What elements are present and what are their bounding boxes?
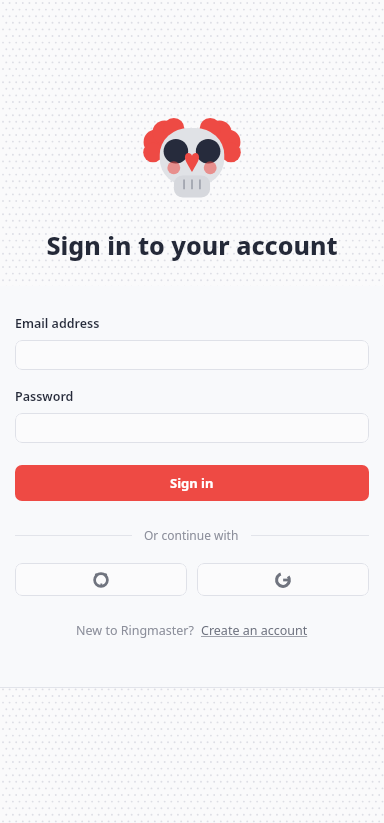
button[interactable]: Sign in with GitHub — [15, 563, 187, 596]
button[interactable] — [15, 340, 369, 370]
staticText: Sign in to your account — [46, 228, 338, 262]
staticText: Create an account — [201, 622, 308, 639]
staticText: Sign in — [170, 474, 214, 492]
button[interactable] — [15, 413, 369, 443]
button[interactable]: Create an account — [201, 622, 308, 639]
staticText: Email address — [15, 315, 100, 332]
staticText: Password — [15, 388, 74, 405]
button[interactable]: Sign in — [15, 465, 369, 501]
button[interactable]: Sign in with Google — [197, 563, 369, 596]
staticText: Or continue with — [144, 527, 239, 543]
staticText: New to Ringmaster? — [76, 622, 194, 639]
